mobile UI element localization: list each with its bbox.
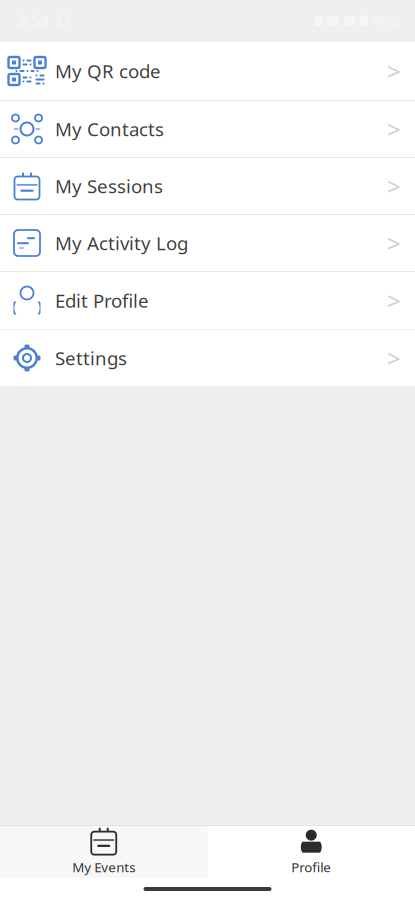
staticText: > — [387, 55, 401, 87]
button[interactable]: My Activity Log — [0, 215, 415, 271]
staticText: My Sessions — [55, 174, 163, 198]
button[interactable]: My Events — [0, 826, 207, 878]
button[interactable]: Settings — [0, 330, 415, 386]
button[interactable]: My Sessions — [0, 158, 415, 214]
staticText: > — [387, 342, 401, 374]
staticText: My QR code — [55, 59, 161, 83]
staticText: > — [387, 170, 401, 202]
button[interactable]: Profile — [207, 826, 415, 878]
staticText: Profile — [291, 858, 331, 876]
staticText: My Contacts — [55, 117, 164, 141]
staticText: > — [387, 227, 401, 259]
button[interactable]: My Contacts — [0, 101, 415, 157]
staticText: My Events — [72, 858, 135, 876]
button[interactable]: Edit Profile — [0, 272, 415, 329]
staticText: My Activity Log — [55, 231, 188, 255]
button[interactable]: My QR code — [0, 42, 415, 100]
staticText: > — [387, 113, 401, 145]
staticText: > — [387, 285, 401, 316]
staticText: Edit Profile — [55, 288, 149, 313]
staticText: Settings — [55, 346, 127, 370]
